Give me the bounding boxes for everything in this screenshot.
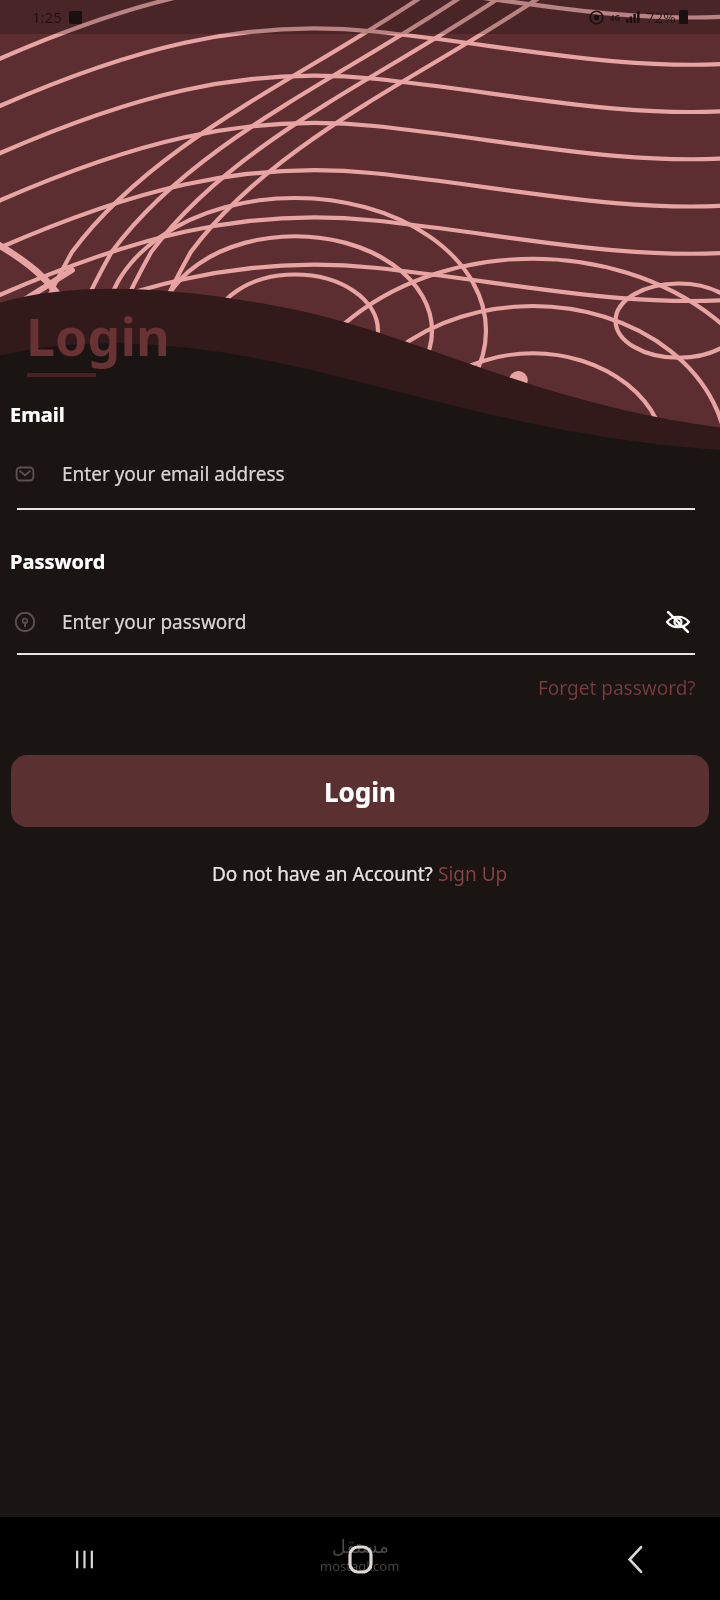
button[interactable]: Sign Up: [438, 861, 508, 887]
staticText: Enter your email address: [62, 461, 285, 487]
staticText: Forget password?: [538, 675, 696, 701]
staticText: Enter your password: [62, 609, 247, 635]
button[interactable]: Enter your password: [0, 601, 720, 643]
button[interactable]: Forget password?: [538, 671, 720, 705]
staticText: مستقل: [332, 1535, 389, 1557]
button[interactable]: Login: [11, 755, 709, 827]
staticText: Sign Up: [438, 861, 508, 887]
staticText: 72%: [646, 7, 676, 27]
button[interactable]: Home: [332, 1531, 388, 1587]
staticText: Login: [324, 774, 396, 809]
staticText: 4G: [610, 12, 621, 23]
button[interactable]: Enter your email address: [0, 454, 720, 494]
button[interactable]: Back: [608, 1531, 664, 1587]
staticText: Password: [10, 548, 106, 575]
button[interactable]: Show password: [658, 602, 698, 642]
staticText: Email: [10, 401, 65, 428]
staticText: Do not have an Account?: [212, 861, 438, 887]
button[interactable]: Recent apps: [56, 1531, 112, 1587]
staticText: mostaql.com: [320, 1557, 400, 1575]
staticText: 1:25: [32, 7, 62, 27]
staticText: Login: [26, 300, 170, 371]
